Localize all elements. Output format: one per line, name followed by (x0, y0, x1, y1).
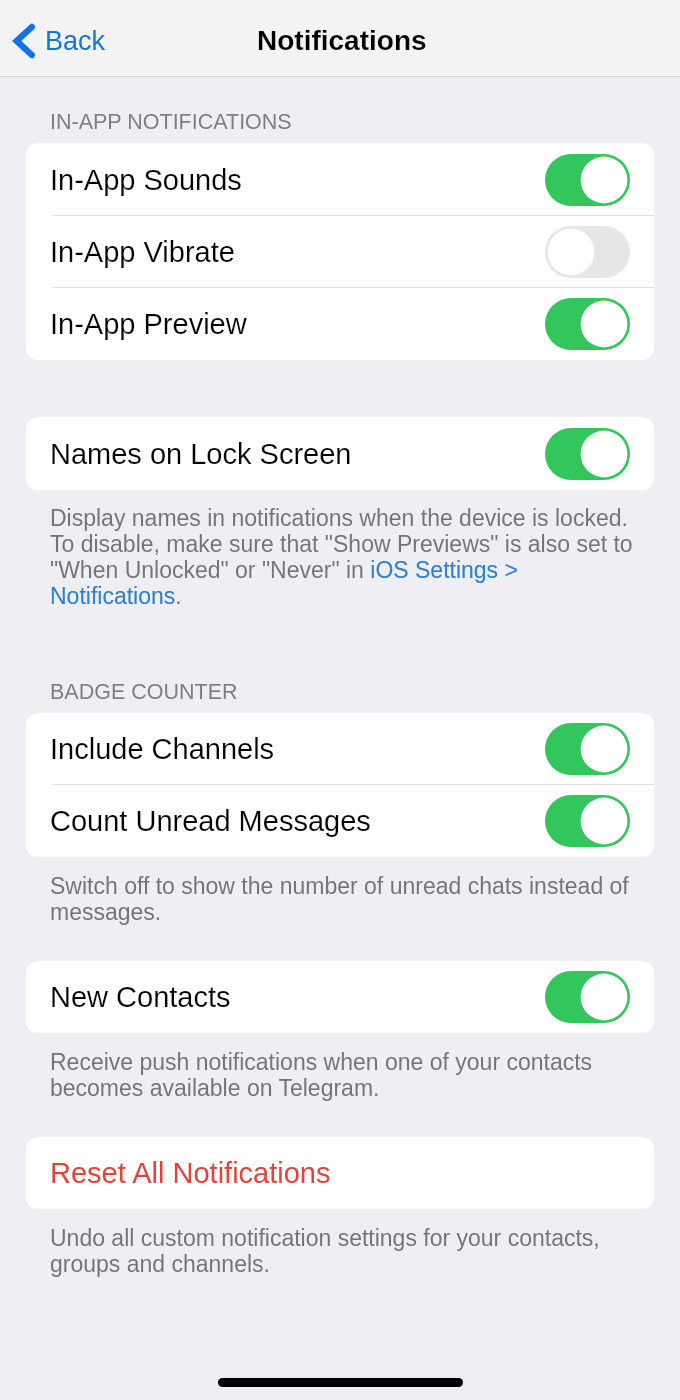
button[interactable]: Count Unread Messages (26, 785, 654, 857)
button[interactable]: Switch on (545, 795, 630, 847)
button[interactable]: Back (11, 10, 106, 72)
staticText: Names on Lock Screen (50, 438, 352, 470)
staticText: Switch off to show the number of unread … (50, 873, 636, 925)
staticText: In-App Vibrate (50, 236, 235, 268)
button[interactable]: Switch on (545, 428, 630, 480)
staticText: Undo all custom notification settings fo… (50, 1225, 636, 1277)
button[interactable]: Include Channels (26, 713, 654, 785)
staticText: New Contacts (50, 981, 231, 1013)
button[interactable]: Switch on (545, 723, 630, 775)
button[interactable]: Reset All Notifications (26, 1137, 654, 1209)
button[interactable]: In-App Vibrate (26, 216, 654, 288)
staticText: Reset All Notifications (50, 1157, 331, 1189)
button[interactable]: New Contacts (26, 961, 654, 1033)
button[interactable]: Switch on (545, 971, 630, 1023)
staticText: Count Unread Messages (50, 805, 371, 837)
button[interactable]: In-App Sounds (26, 143, 654, 216)
button[interactable]: Names on Lock Screen (26, 417, 654, 490)
staticText: In-App Sounds (50, 164, 242, 196)
button[interactable]: Switch off (545, 226, 630, 278)
button[interactable]: Switch on (545, 154, 630, 206)
staticText: Include Channels (50, 733, 275, 765)
staticText: Back (45, 26, 106, 56)
staticText: Receive push notifications when one of y… (50, 1049, 636, 1101)
staticText: IN-APP NOTIFICATIONS (50, 110, 292, 134)
staticText: Notifications (257, 25, 427, 56)
button[interactable]: In-App Preview (26, 288, 654, 360)
staticText: In-App Preview (50, 308, 247, 340)
button[interactable]: Switch on (545, 298, 630, 350)
staticText: Display names in notifications when the … (50, 505, 636, 609)
staticText: BADGE COUNTER (50, 680, 238, 704)
other: Back (11, 23, 37, 59)
